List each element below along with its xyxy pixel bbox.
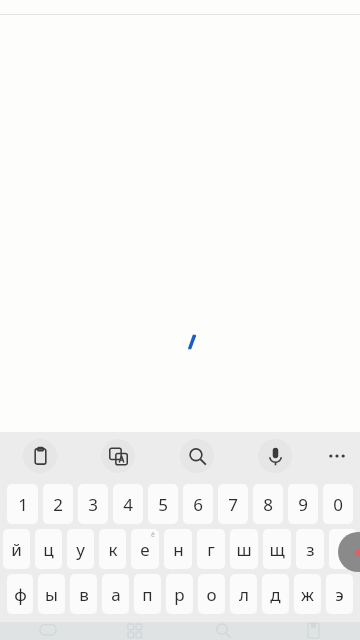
staticText: в [79, 583, 89, 606]
button[interactable]: п [134, 574, 161, 614]
staticText: ы [45, 583, 58, 606]
button[interactable]: р [166, 574, 193, 614]
button[interactable]: ф [7, 574, 33, 614]
button[interactable]: д [262, 574, 289, 614]
button[interactable]: Voice input [258, 439, 292, 473]
button[interactable]: э [326, 574, 353, 614]
staticText: 2 [53, 493, 63, 516]
staticText: е [140, 538, 150, 561]
button[interactable]: Assistant [338, 532, 360, 572]
button[interactable]: щ [263, 529, 291, 569]
button[interactable]: в [70, 574, 97, 614]
staticText: л [239, 583, 249, 606]
staticText: х [339, 538, 348, 561]
button[interactable]: н [164, 529, 192, 569]
staticText: г [207, 538, 215, 561]
button[interactable]: 7 [218, 484, 248, 524]
button[interactable]: 6 [183, 484, 213, 524]
staticText: ж [301, 583, 314, 606]
staticText: д [270, 583, 281, 606]
button[interactable]: о [198, 574, 225, 614]
staticText: э [335, 583, 344, 606]
button[interactable]: 5 [148, 484, 178, 524]
staticText: ё [151, 530, 155, 540]
staticText: н [173, 538, 184, 561]
button[interactable]: х [329, 529, 357, 569]
button[interactable]: 0 [323, 484, 353, 524]
staticText: 6 [193, 493, 203, 516]
staticText: р [174, 583, 185, 606]
staticText: 3 [88, 493, 98, 516]
button[interactable]: 8 [253, 484, 283, 524]
staticText: 4 [123, 493, 133, 516]
staticText: п [142, 583, 153, 606]
button[interactable]: More options [320, 439, 354, 473]
button[interactable]: з [296, 529, 324, 569]
staticText: у [76, 538, 85, 561]
button[interactable]: 9 [288, 484, 318, 524]
staticText: щ [269, 538, 285, 561]
staticText: ш [236, 538, 252, 561]
staticText: о [206, 583, 217, 606]
staticText: 5 [158, 493, 168, 516]
staticText: а [111, 583, 121, 606]
button[interactable]: 4 [113, 484, 143, 524]
staticText: з [306, 538, 315, 561]
button[interactable]: 2 [43, 484, 73, 524]
button[interactable]: г [197, 529, 225, 569]
button[interactable]: Translate [101, 439, 135, 473]
staticText: ф [14, 583, 27, 606]
button[interactable]: л [230, 574, 257, 614]
staticText: 1 [18, 493, 28, 516]
button[interactable]: е [131, 529, 159, 569]
button[interactable]: ш [230, 529, 258, 569]
button[interactable]: к [99, 529, 126, 569]
button[interactable]: 3 [78, 484, 108, 524]
button[interactable]: а [102, 574, 129, 614]
staticText: ц [43, 538, 54, 561]
button[interactable]: ц [35, 529, 62, 569]
staticText: 0 [333, 493, 343, 516]
button[interactable]: Clipboard [23, 439, 57, 473]
button[interactable]: й [3, 529, 30, 569]
button[interactable]: 1 [7, 484, 38, 524]
button[interactable]: ж [294, 574, 321, 614]
staticText: 9 [298, 493, 308, 516]
button[interactable]: у [67, 529, 94, 569]
staticText: к [108, 538, 118, 561]
button[interactable]: Search [180, 439, 214, 473]
button[interactable]: ы [38, 574, 65, 614]
staticText: й [11, 538, 22, 561]
staticText: 7 [228, 493, 238, 516]
staticText: 8 [263, 493, 273, 516]
